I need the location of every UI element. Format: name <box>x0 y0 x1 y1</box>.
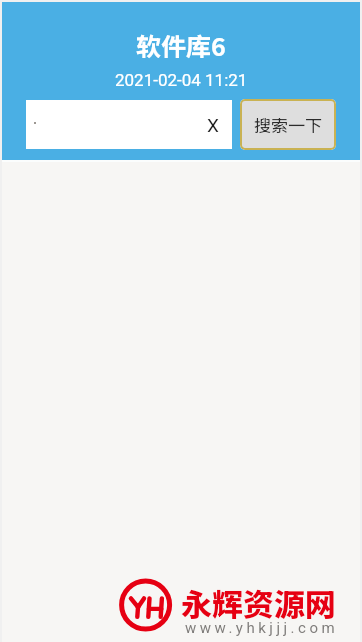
staticText: 搜索一下 <box>254 112 322 137</box>
button[interactable]: Clear search text <box>26 100 232 149</box>
staticText: 软件库6 <box>136 27 226 63</box>
button[interactable]: Clear search text <box>196 100 232 149</box>
button[interactable]: 搜索一下 <box>240 99 336 150</box>
staticText: www.yhkjjj.com <box>185 619 339 637</box>
staticText: 永辉资源网 <box>181 580 336 625</box>
staticText: X <box>207 114 219 136</box>
staticText: 2021-02-04 11:21 <box>115 70 248 90</box>
